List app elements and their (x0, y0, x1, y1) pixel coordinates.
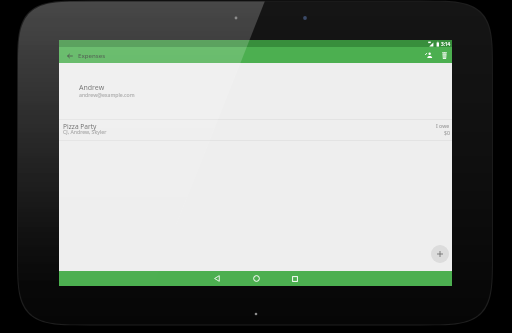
button[interactable]: Pizza Party (59, 119, 452, 140)
button[interactable]: Delete (438, 49, 450, 61)
staticText: $0 (444, 129, 450, 136)
staticText: Andrew (79, 83, 105, 93)
staticText: Expenses (78, 51, 106, 59)
button[interactable]: Back (204, 271, 230, 286)
button[interactable]: Home (243, 271, 269, 286)
button[interactable]: Add person (423, 49, 435, 61)
staticText: I owe (436, 122, 450, 129)
staticText: 3:14 (441, 41, 451, 47)
button[interactable]: Recents (282, 271, 308, 286)
button[interactable]: Add expense (431, 245, 449, 263)
staticText: CJ, Andrew, Skyler (63, 128, 107, 135)
staticText: andrew@example.com (79, 91, 135, 98)
staticText: Pizza Party (63, 122, 97, 131)
button[interactable]: Back (64, 50, 75, 61)
